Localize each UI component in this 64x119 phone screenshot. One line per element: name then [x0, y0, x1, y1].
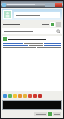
button[interactable]: Toolbar item 6	[28, 94, 32, 98]
button[interactable]: Toolbar item 3	[13, 94, 17, 98]
button[interactable]: Toolbar item 4	[18, 94, 22, 98]
button[interactable]: Toolbar item 1	[3, 94, 7, 98]
button[interactable]	[34, 112, 47, 116]
button[interactable]	[2, 21, 41, 27]
button[interactable]: Toolbar item 7	[33, 94, 37, 98]
button[interactable]: Toolbar item 8	[38, 94, 42, 98]
button[interactable]: Toolbar item 5	[23, 94, 27, 98]
other: Search	[56, 29, 61, 34]
button[interactable]: Account avatar	[4, 11, 11, 18]
button[interactable]: Close	[55, 3, 62, 7]
button[interactable]	[14, 12, 60, 18]
button[interactable]	[53, 112, 61, 116]
button[interactable]: Search	[2, 28, 62, 34]
button[interactable]: Toolbar item 2	[8, 94, 12, 98]
